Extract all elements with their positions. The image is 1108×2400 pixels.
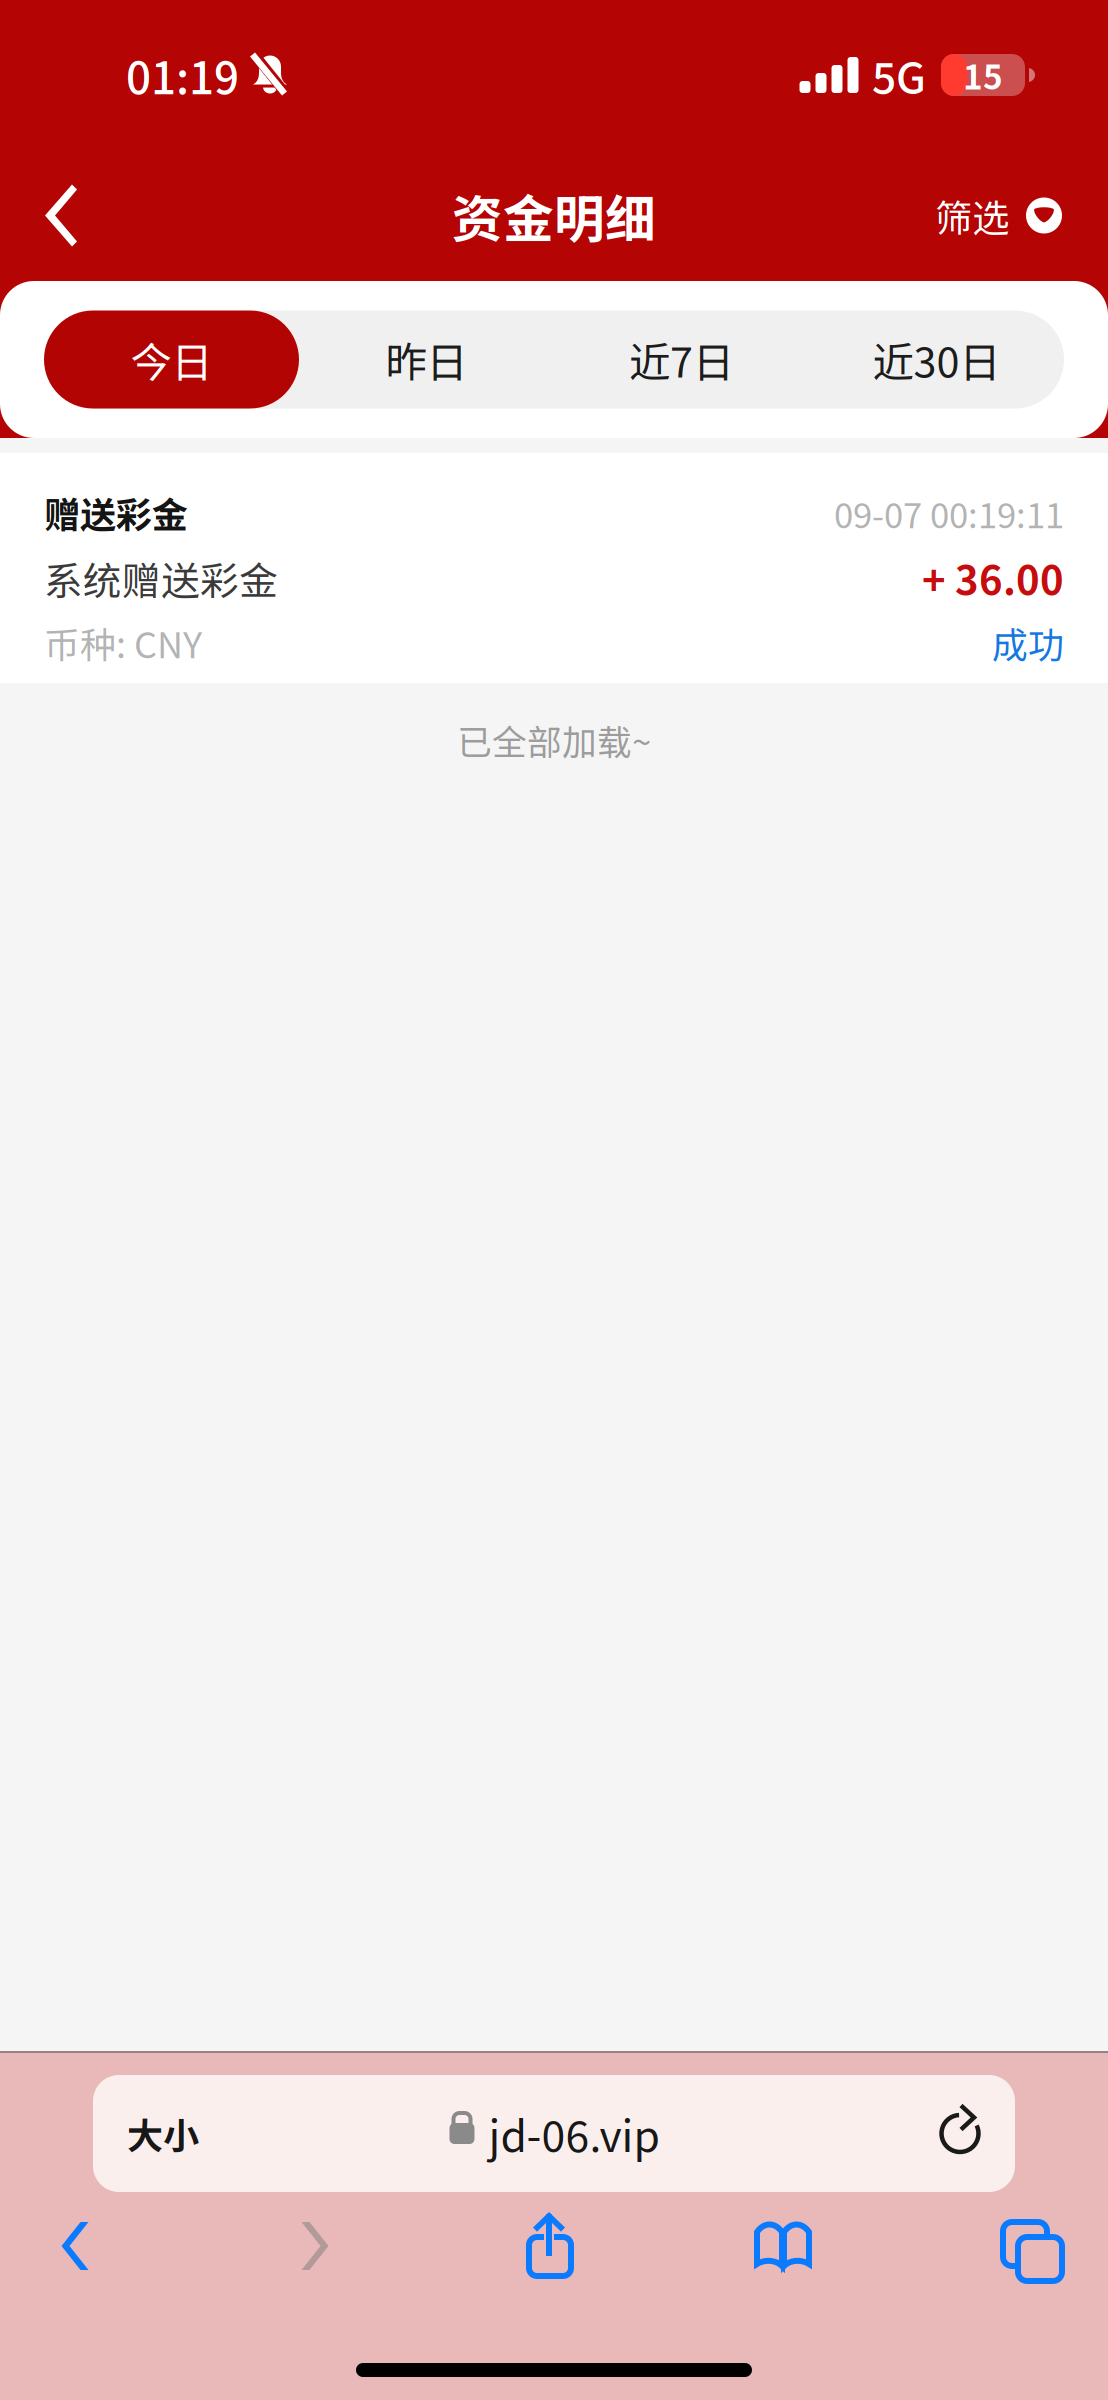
staticText: 昨日: [385, 330, 467, 389]
staticText: 01:19: [126, 43, 239, 107]
button[interactable]: Share: [480, 2192, 620, 2300]
staticText: 近7日: [629, 330, 734, 389]
button[interactable]: 今日: [44, 310, 299, 408]
button[interactable]: Back: [0, 162, 110, 268]
staticText: + 36.00: [922, 548, 1064, 606]
staticText: 筛选: [935, 188, 1009, 243]
staticText: 今日: [130, 330, 212, 389]
button[interactable]: jd-06.vip: [93, 2075, 1015, 2192]
button[interactable]: Forward: [150, 2192, 480, 2300]
staticText: 已全部加载~: [457, 715, 651, 765]
button[interactable]: Back: [0, 2192, 150, 2300]
staticText: 资金明细: [452, 179, 656, 252]
staticText: jd-06.vip: [488, 2103, 659, 2164]
button[interactable]: 昨日: [299, 310, 554, 408]
button[interactable]: 近7日: [554, 310, 809, 408]
button[interactable]: 筛选: [935, 166, 1108, 265]
staticText: 币种: CNY: [44, 616, 202, 668]
staticText: 15: [963, 51, 1003, 99]
staticText: 赠送彩金: [44, 486, 188, 538]
staticText: 大小: [127, 2107, 199, 2159]
button[interactable]: 近30日: [809, 310, 1064, 408]
button[interactable]: Tabs: [946, 2192, 1108, 2300]
staticText: 系统赠送彩金: [44, 550, 278, 606]
staticText: 近30日: [872, 330, 1000, 389]
staticText: 成功: [992, 616, 1064, 668]
staticText: 5G: [872, 44, 926, 106]
button[interactable]: 赠送彩金: [0, 453, 1108, 683]
button[interactable]: Bookmarks: [620, 2192, 946, 2300]
staticText: 09-07 00:19:11: [834, 488, 1064, 538]
